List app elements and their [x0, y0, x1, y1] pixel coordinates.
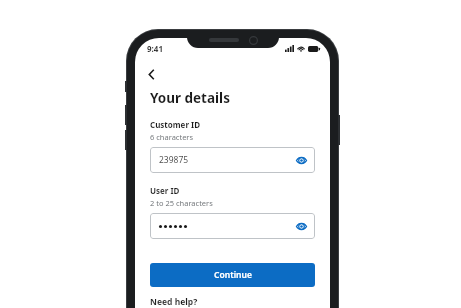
staticText: Your details [150, 89, 230, 107]
button[interactable]: Show value [150, 213, 315, 239]
button[interactable]: Need help? [150, 296, 198, 308]
staticText: Need help? [150, 296, 198, 308]
staticText: 9:41 [147, 43, 163, 54]
staticText: 6 characters [150, 132, 194, 142]
staticText: Continue [214, 269, 252, 281]
staticText: 239875 [159, 154, 189, 166]
staticText: Customer ID [150, 119, 201, 130]
button[interactable]: 239875 [150, 147, 315, 173]
button[interactable]: Show value [293, 218, 309, 234]
button[interactable]: Show value [293, 152, 309, 168]
staticText: User ID [150, 185, 180, 196]
button[interactable]: Back [140, 63, 162, 85]
button[interactable]: Continue [150, 263, 315, 287]
staticText: 2 to 25 characters [150, 198, 213, 208]
